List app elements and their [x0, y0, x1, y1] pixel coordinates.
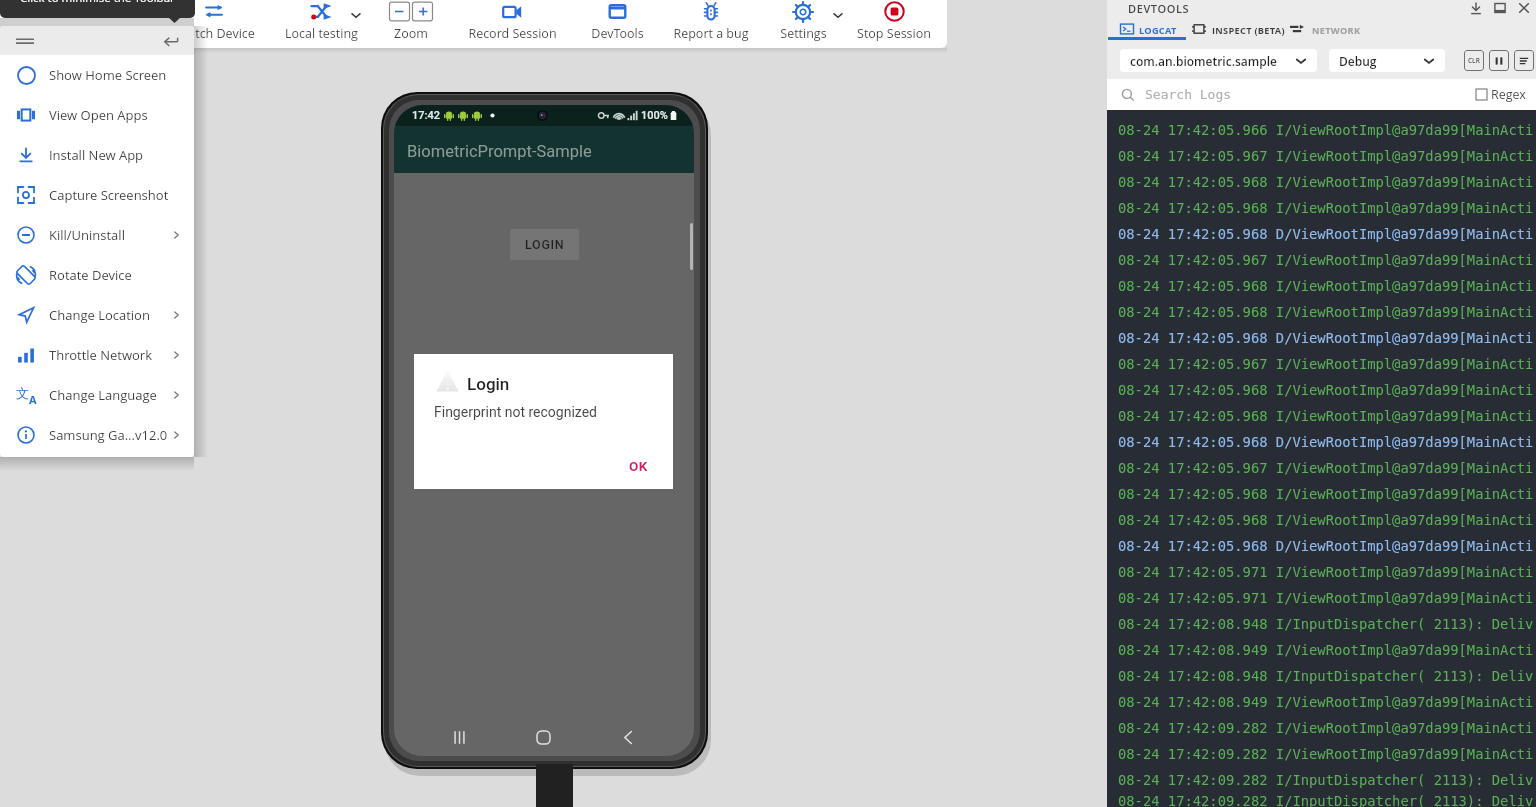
- staticText: 08-24 17:42:05.971 I/ViewRootImpl@a97da9…: [1118, 564, 1534, 580]
- button[interactable]: Record Session: [452, 0, 572, 48]
- button[interactable]: [1286, 18, 1364, 40]
- staticText: NETWORK: [1312, 24, 1361, 37]
- staticText: tch Device: [195, 25, 255, 42]
- staticText: Show Home Screen: [49, 66, 167, 84]
- button[interactable]: Back: [610, 720, 645, 755]
- button[interactable]: Close: [1516, 0, 1532, 16]
- staticText: Local testing: [285, 25, 358, 42]
- staticText: 08-24 17:42:05.967 I/ViewRootImpl@a97da9…: [1118, 252, 1534, 268]
- staticText: Fingerprint not recognized: [434, 404, 597, 420]
- staticText: 08-24 17:42:05.968 I/ViewRootImpl@a97da9…: [1118, 408, 1534, 424]
- button[interactable]: Stop Session: [834, 0, 954, 48]
- staticText: 08-24 17:42:05.968 I/ViewRootImpl@a97da9…: [1118, 486, 1534, 502]
- button[interactable]: Settings options: [831, 8, 845, 22]
- staticText: Zoom: [394, 25, 428, 42]
- button[interactable]: Pause logs: [1489, 50, 1509, 71]
- button[interactable]: [1116, 18, 1191, 40]
- staticText: Click to minimise the Toolbar: [20, 0, 175, 6]
- staticText: INSPECT (BETA): [1212, 24, 1285, 37]
- staticText: 08-24 17:42:08.948 I/InputDispatcher( 21…: [1118, 668, 1534, 684]
- staticText: 08-24 17:42:09.282 I/ViewRootImpl@a97da9…: [1118, 720, 1534, 736]
- staticText: 17:42: [412, 109, 440, 122]
- staticText: 08-24 17:42:05.971 I/ViewRootImpl@a97da9…: [1118, 590, 1534, 606]
- staticText: LOGIN: [525, 237, 565, 252]
- button[interactable]: Minimise: [1492, 0, 1508, 16]
- staticText: com.an.biometric.sample: [1130, 53, 1277, 69]
- button[interactable]: LOGIN: [510, 229, 579, 260]
- staticText: 08-24 17:42:05.968 D/ViewRootImpl@a97da9…: [1118, 434, 1534, 450]
- button[interactable]: Report a bug: [651, 0, 771, 48]
- button[interactable]: Wrap lines: [1514, 50, 1534, 71]
- staticText: DevTools: [591, 25, 644, 42]
- staticText: 08-24 17:42:08.949 I/ViewRootImpl@a97da9…: [1118, 694, 1534, 710]
- staticText: 08-24 17:42:05.968 D/ViewRootImpl@a97da9…: [1118, 330, 1534, 346]
- button[interactable]: Settings: [743, 0, 863, 48]
- button[interactable]: Rotate Device: [0, 255, 194, 295]
- staticText: 08-24 17:42:05.968 I/ViewRootImpl@a97da9…: [1118, 200, 1534, 216]
- staticText: 文: [16, 385, 29, 401]
- staticText: Regex: [1491, 86, 1526, 103]
- staticText: 08-24 17:42:08.948 I/InputDispatcher( 21…: [1118, 616, 1534, 632]
- staticText: 08-24 17:42:09.282 I/InputDispatcher( 21…: [1118, 772, 1534, 788]
- staticText: Throttle Network: [49, 346, 152, 364]
- button[interactable]: Local testing: [261, 0, 381, 48]
- staticText: 08-24 17:42:05.967 I/ViewRootImpl@a97da9…: [1118, 148, 1534, 164]
- button[interactable]: 文: [0, 375, 194, 415]
- staticText: Record Session: [468, 25, 557, 42]
- button[interactable]: Home: [526, 720, 561, 755]
- button[interactable]: com.an.biometric.sample: [1120, 49, 1317, 72]
- staticText: 08-24 17:42:05.967 I/ViewRootImpl@a97da9…: [1118, 356, 1534, 372]
- staticText: 08-24 17:42:05.968 I/ViewRootImpl@a97da9…: [1118, 174, 1534, 190]
- staticText: 100%: [641, 109, 668, 122]
- staticText: Kill/Uninstall: [49, 226, 125, 244]
- staticText: View Open Apps: [49, 106, 148, 124]
- button[interactable]: Show Home Screen: [0, 55, 194, 95]
- staticText: 08-24 17:42:05.967 I/ViewRootImpl@a97da9…: [1118, 460, 1534, 476]
- button[interactable]: Menu: [16, 32, 34, 50]
- staticText: 08-24 17:42:05.968 I/ViewRootImpl@a97da9…: [1118, 382, 1534, 398]
- button[interactable]: Kill/Uninstall: [0, 215, 194, 255]
- button[interactable]: Recents: [442, 720, 477, 755]
- button[interactable]: [1188, 18, 1264, 40]
- button[interactable]: Samsung Ga…v12.0: [0, 415, 194, 455]
- button[interactable]: DevTools: [557, 0, 677, 48]
- button[interactable]: Capture Screenshot: [0, 175, 194, 215]
- staticText: Search Logs: [1145, 87, 1232, 102]
- button[interactable]: Collapse: [164, 33, 180, 49]
- button[interactable]: Clear logs: [1464, 50, 1484, 71]
- staticText: Change Language: [49, 386, 157, 404]
- button[interactable]: Throttle Network: [0, 335, 194, 375]
- staticText: 08-24 17:42:09.282 I/InputDispatcher( 21…: [1118, 793, 1534, 807]
- staticText: CLR: [1468, 56, 1480, 65]
- button[interactable]: View Open Apps: [0, 95, 194, 135]
- button[interactable]: OK: [618, 451, 659, 481]
- staticText: 08-24 17:42:05.968 I/ViewRootImpl@a97da9…: [1118, 304, 1534, 320]
- staticText: Settings: [780, 25, 827, 42]
- button[interactable]: Debug: [1329, 49, 1445, 72]
- button[interactable]: Install New App: [0, 135, 194, 175]
- staticText: 08-24 17:42:05.968 D/ViewRootImpl@a97da9…: [1118, 226, 1534, 242]
- staticText: 08-24 17:42:08.949 I/ViewRootImpl@a97da9…: [1118, 642, 1534, 658]
- staticText: 08-24 17:42:05.968 I/ViewRootImpl@a97da9…: [1118, 512, 1534, 528]
- staticText: Stop Session: [857, 25, 931, 42]
- staticText: Debug: [1339, 53, 1377, 69]
- button[interactable]: Local testing options: [349, 8, 363, 22]
- staticText: Change Location: [49, 306, 150, 324]
- button[interactable]: Zoom: [351, 0, 471, 48]
- button[interactable]: Change Location: [0, 295, 194, 335]
- staticText: 08-24 17:42:05.968 D/ViewRootImpl@a97da9…: [1118, 538, 1534, 554]
- button[interactable]: Download: [1468, 0, 1484, 16]
- button[interactable]: Regex: [1476, 86, 1526, 103]
- staticText: 08-24 17:42:05.968 I/ViewRootImpl@a97da9…: [1118, 278, 1534, 294]
- staticText: Rotate Device: [49, 266, 132, 284]
- staticText: 08-24 17:42:05.966 I/ViewRootImpl@a97da9…: [1118, 122, 1534, 138]
- staticText: LOGCAT: [1139, 24, 1177, 37]
- staticText: DEVTOOLS: [1128, 1, 1190, 16]
- staticText: 08-24 17:42:09.282 I/ViewRootImpl@a97da9…: [1118, 746, 1534, 762]
- staticText: Report a bug: [673, 25, 749, 42]
- staticText: Login: [467, 374, 510, 394]
- button[interactable]: tch Device: [165, 0, 285, 48]
- staticText: A: [29, 392, 37, 407]
- staticText: Samsung Ga…v12.0: [49, 426, 168, 444]
- staticText: Install New App: [49, 146, 144, 164]
